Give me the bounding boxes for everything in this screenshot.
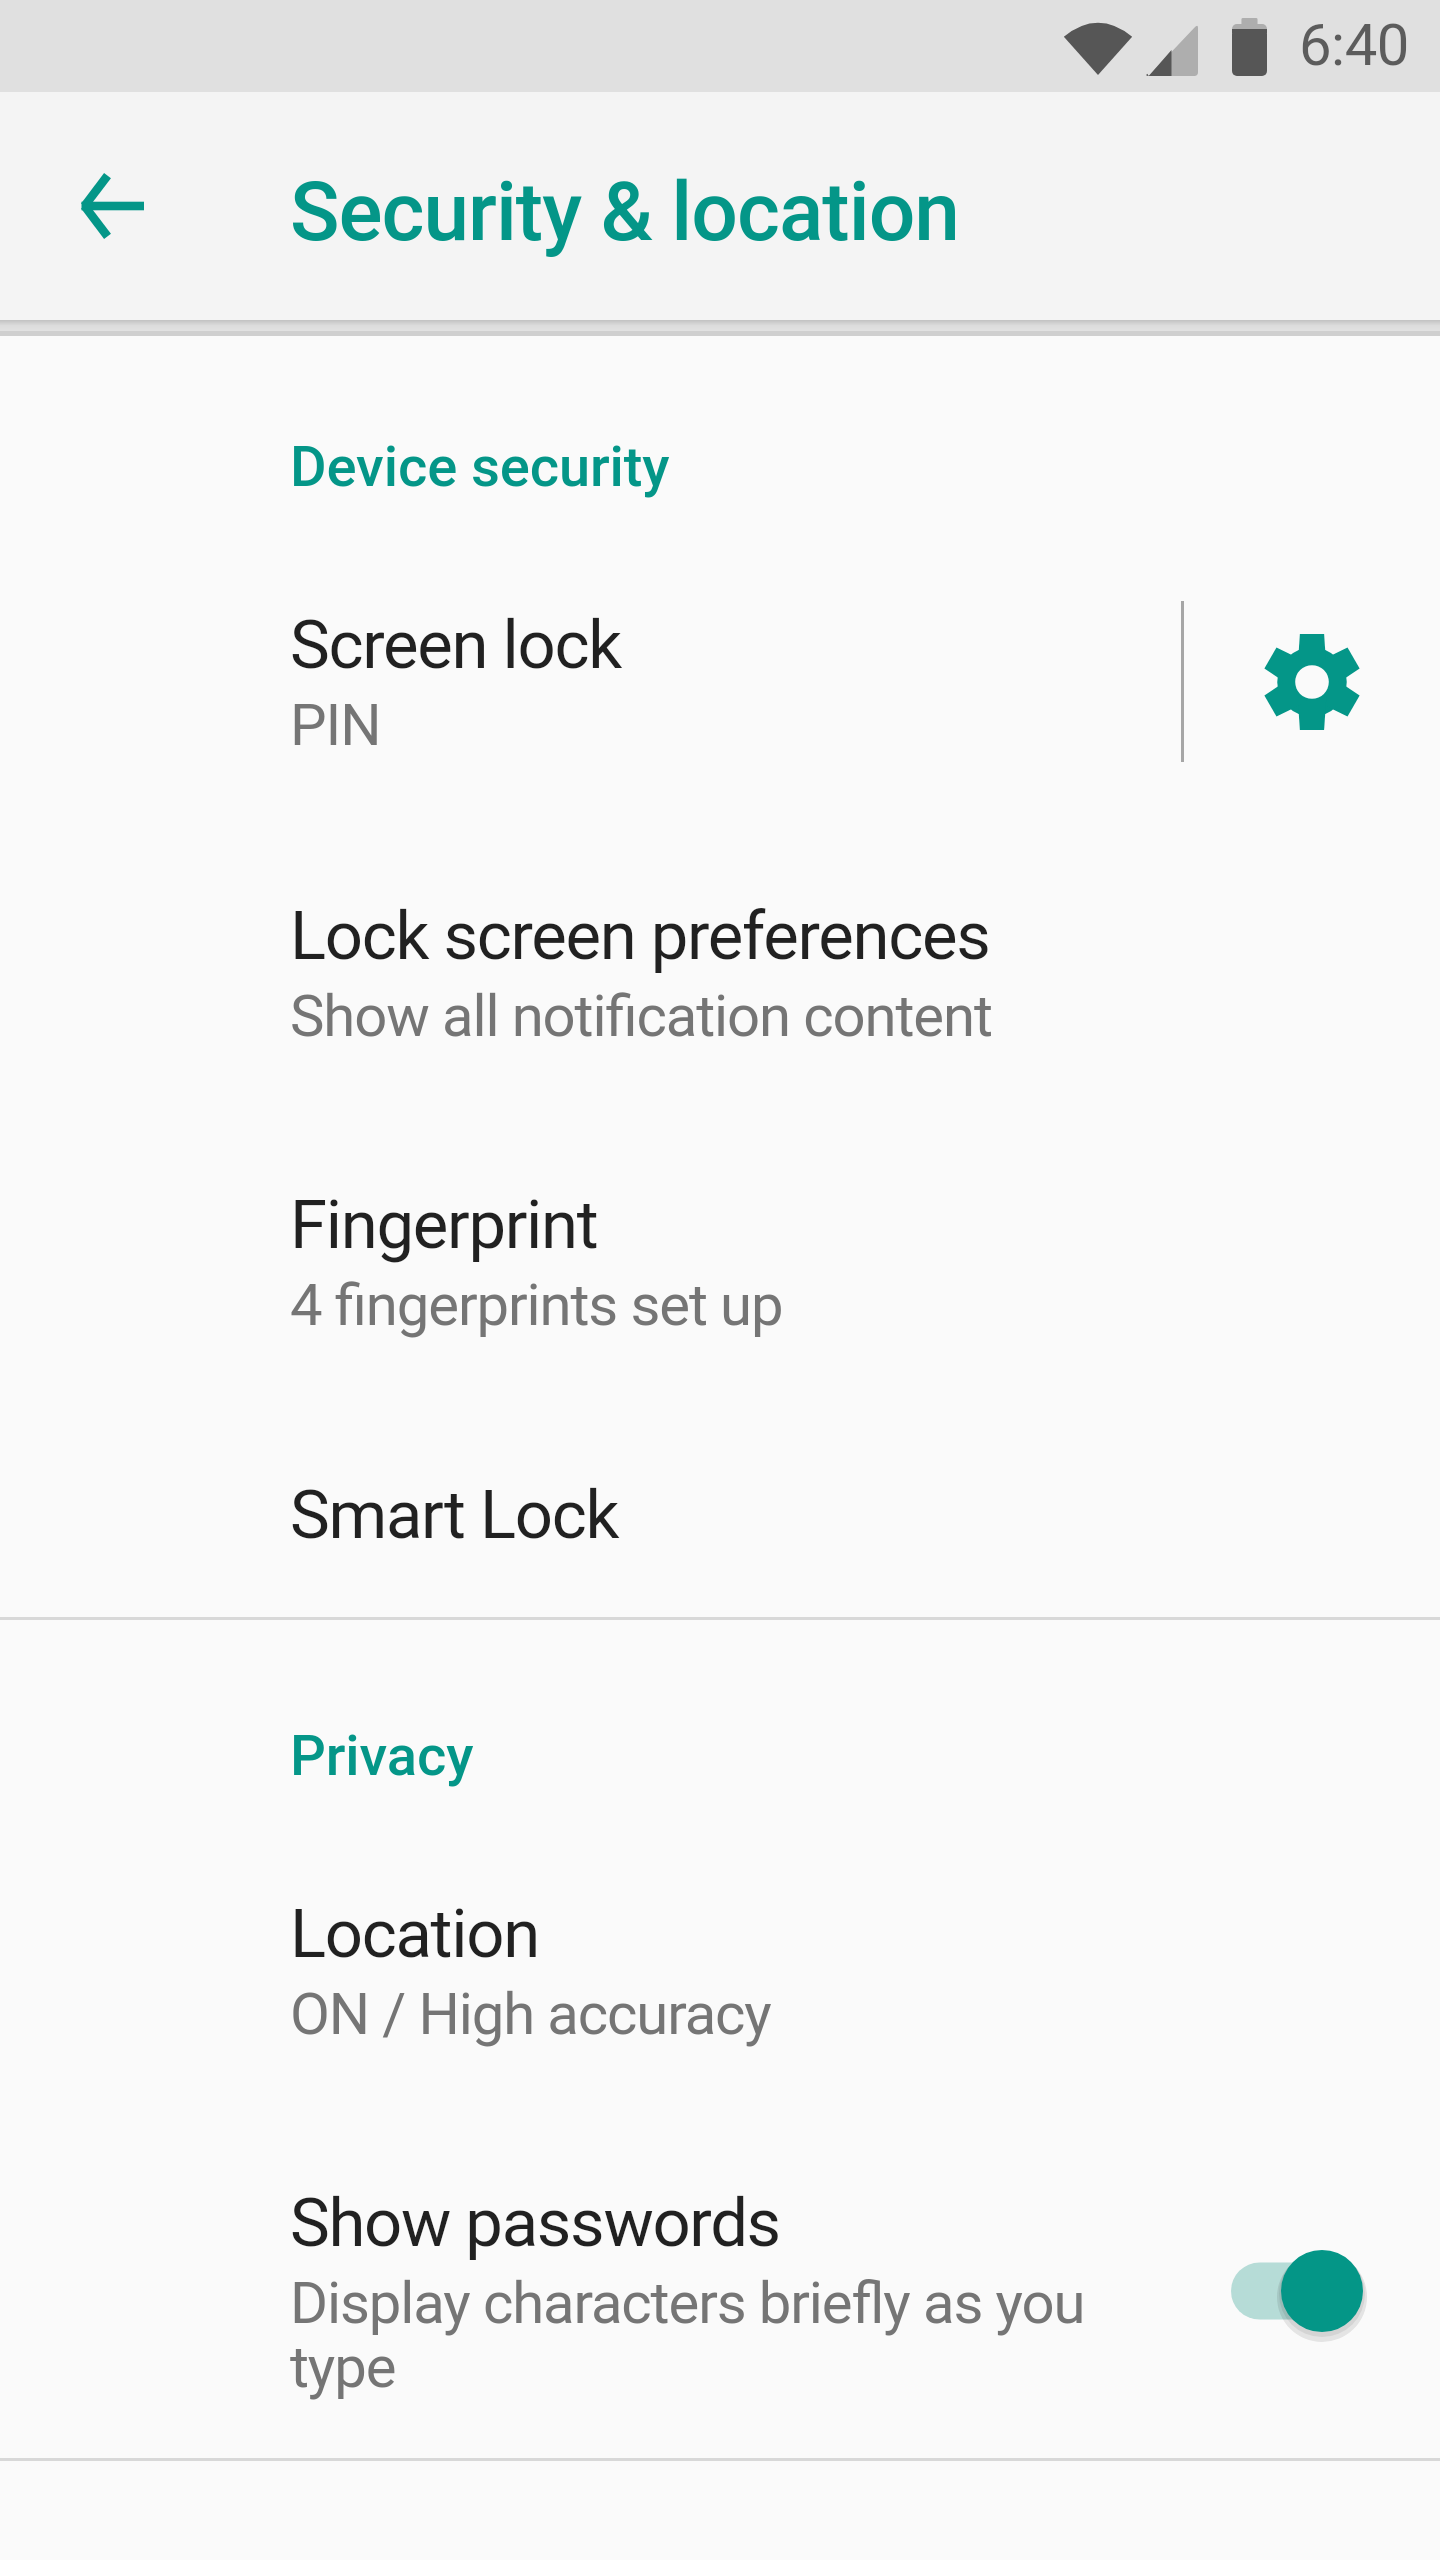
button[interactable]: Show passwords <box>0 2061 1440 2351</box>
staticText: Lock screen preferences <box>290 897 990 976</box>
staticText: Location <box>290 1895 539 1974</box>
staticText: Show passwords <box>290 2184 780 2263</box>
staticText: Security & location <box>290 164 959 260</box>
staticText: 4 fingerprints set up <box>290 1271 783 1339</box>
staticText: Smart Lock <box>290 1476 619 1555</box>
staticText: Privacy <box>290 1723 474 1789</box>
staticText: Show all notification content <box>290 982 992 1050</box>
button[interactable]: Screen lock <box>0 482 1440 772</box>
staticText: ON / High accuracy <box>290 1980 771 2048</box>
staticText: 6:40 <box>1299 11 1409 79</box>
button[interactable]: Navigate up <box>52 146 172 266</box>
button[interactable]: Smart Lock <box>0 1352 1440 1642</box>
staticText: Screen lock <box>290 606 621 685</box>
button[interactable]: Screen lock settings <box>1222 592 1402 772</box>
button[interactable]: Show passwords, on <box>1211 2201 1421 2381</box>
staticText: Display characters briefly as you type <box>290 2269 1120 2402</box>
staticText: Fingerprint <box>290 1186 598 1265</box>
staticText: Device security <box>290 434 670 500</box>
button[interactable]: Fingerprint <box>0 1062 1440 1352</box>
button[interactable]: Lock screen preferences <box>0 772 1440 1062</box>
staticText: PIN <box>290 691 381 759</box>
button[interactable]: Location <box>0 1771 1440 2061</box>
